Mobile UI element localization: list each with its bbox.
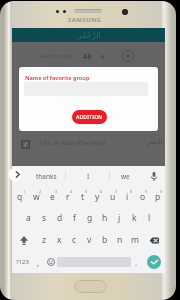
button[interactable]: ADDITION [72, 110, 107, 124]
staticText: y [95, 191, 100, 203]
staticText: o [140, 191, 146, 203]
staticText: t [81, 191, 85, 203]
staticText: , [37, 257, 40, 268]
button[interactable]: m [127, 229, 142, 251]
staticText: d [57, 212, 63, 224]
button[interactable]: b [97, 229, 112, 251]
staticText: ?123 [16, 258, 29, 266]
staticText: All [83, 52, 92, 61]
button[interactable]: Done [142, 251, 165, 273]
staticText: 2 [39, 189, 42, 194]
staticText: 9 [145, 189, 148, 194]
button[interactable]: a [20, 207, 36, 229]
staticText: l [148, 212, 151, 224]
staticText: r [66, 191, 70, 203]
staticText: 110. an-Nasr (The Help) [39, 139, 105, 147]
button[interactable]: n [112, 229, 127, 251]
button[interactable]: p [150, 186, 165, 207]
button[interactable]: I [72, 166, 104, 186]
staticText: c [72, 234, 77, 246]
button[interactable]: j [112, 207, 127, 229]
button[interactable]: Voice input [147, 166, 161, 186]
staticText: u [110, 191, 116, 203]
button[interactable]: , [33, 251, 44, 273]
staticText: b [102, 234, 108, 246]
staticText: 3 [55, 189, 58, 194]
button[interactable]: Shift [12, 229, 36, 251]
button[interactable]: More suggestions [8, 167, 23, 182]
staticText: 6 [100, 189, 103, 194]
button[interactable]: t [75, 186, 90, 207]
button[interactable]: v [82, 229, 97, 251]
staticText: 4 [70, 189, 73, 194]
staticText: k [132, 212, 137, 224]
staticText: z [42, 234, 46, 246]
staticText: h [102, 212, 108, 224]
button[interactable]: c [67, 229, 82, 251]
button[interactable]: x [52, 229, 67, 251]
staticText: 5 [85, 189, 88, 194]
staticText: m [131, 234, 139, 246]
button[interactable]: e [44, 186, 60, 207]
button[interactable]: All [83, 52, 105, 61]
button[interactable]: g [82, 207, 97, 229]
button[interactable]: s [36, 207, 52, 229]
button[interactable]: i [120, 186, 135, 207]
staticText: q [17, 191, 23, 203]
button[interactable]: 110. an-Nasr (The Help) [12, 134, 165, 150]
button[interactable]: z [36, 229, 52, 251]
staticText: e [50, 191, 55, 203]
staticText: ADDITION [76, 114, 103, 121]
staticText: 7 [115, 189, 118, 194]
staticText: w [33, 191, 40, 203]
button[interactable]: Home [74, 280, 107, 293]
button[interactable]: Favorite List [39, 52, 74, 60]
staticText: s [42, 212, 47, 224]
button[interactable]: k [127, 207, 142, 229]
staticText: Name of favorite group [25, 74, 90, 81]
staticText: v [87, 234, 92, 246]
button[interactable]: w [28, 186, 44, 207]
button[interactable]: . [131, 251, 142, 273]
staticText: النصر [147, 138, 162, 146]
button[interactable]: f [67, 207, 82, 229]
button[interactable]: r [60, 186, 75, 207]
button[interactable]: ?123 [12, 251, 33, 273]
staticText: a [26, 212, 31, 224]
button[interactable]: Backspace [142, 229, 165, 251]
button[interactable]: h [97, 207, 112, 229]
staticText: 8 [130, 189, 133, 194]
staticText: i [126, 191, 129, 203]
button[interactable]: o [135, 186, 150, 207]
staticText: x [57, 234, 62, 246]
staticText: g [87, 212, 93, 224]
button[interactable]: l [142, 207, 157, 229]
staticText: we [121, 172, 130, 181]
button[interactable]: we [111, 166, 139, 186]
button[interactable]: Emoji [44, 251, 57, 273]
button[interactable]: thanks [30, 166, 62, 186]
staticText: thanks [36, 172, 57, 181]
staticText: SAMSUNG [68, 16, 102, 24]
button[interactable]: u [105, 186, 120, 207]
staticText: f [73, 212, 76, 224]
staticText: n [117, 234, 123, 246]
staticText: p [155, 191, 161, 203]
staticText: 1 [23, 189, 26, 194]
staticText: . [135, 257, 138, 268]
button[interactable]: y [90, 186, 105, 207]
staticText: 0 [160, 189, 163, 194]
staticText: I [87, 172, 90, 181]
button[interactable]: d [52, 207, 67, 229]
staticText: الرَّحْمَٰن [76, 31, 101, 40]
button[interactable]: Add group [122, 50, 134, 62]
button[interactable]: q [12, 186, 28, 207]
staticText: j [118, 212, 121, 224]
